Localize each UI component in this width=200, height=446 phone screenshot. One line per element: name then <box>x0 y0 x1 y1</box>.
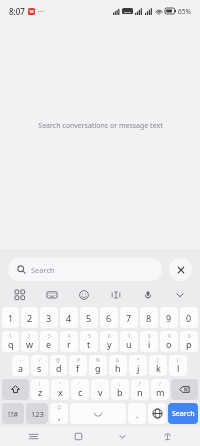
button[interactable]: 1 <box>2 307 19 328</box>
button[interactable]: " <box>51 379 69 400</box>
staticText: h <box>115 362 121 374</box>
button[interactable]: 7 <box>120 331 138 352</box>
button[interactable]: 5 <box>80 331 98 352</box>
button[interactable]: * <box>129 355 147 376</box>
button[interactable]: % <box>89 355 107 376</box>
button[interactable]: Backspace <box>171 379 198 400</box>
staticText: !?# <box>8 409 19 419</box>
staticText: a <box>18 362 24 374</box>
button[interactable]: 2 <box>21 307 38 328</box>
button[interactable]: 7 <box>120 307 138 328</box>
button[interactable]: 4 <box>60 307 78 328</box>
button[interactable]: Search <box>8 258 162 281</box>
button[interactable]: 9 <box>160 331 178 352</box>
staticText: v <box>98 386 103 398</box>
button[interactable]: Change language <box>148 403 166 424</box>
staticText: / <box>39 357 41 363</box>
button[interactable]: ? <box>131 379 149 400</box>
staticText: o <box>166 338 172 350</box>
button[interactable]: Sticker grid <box>12 287 28 303</box>
staticText: 123 <box>31 409 44 419</box>
staticText: 6 <box>108 333 111 339</box>
staticText: 5 <box>86 312 92 324</box>
staticText: % <box>96 357 100 363</box>
staticText: ☺ <box>57 405 62 410</box>
staticText: - <box>20 357 22 363</box>
button[interactable]: 4 <box>60 331 78 352</box>
button[interactable]: Voice input <box>140 287 156 303</box>
button[interactable]: 8 <box>140 307 158 328</box>
button[interactable]: 8 <box>140 331 158 352</box>
button[interactable]: : <box>91 379 109 400</box>
button[interactable]: Shift <box>2 379 29 400</box>
button[interactable]: Collapse toolbar <box>172 287 188 303</box>
button[interactable]: ; <box>111 379 129 400</box>
button[interactable]: Home <box>67 427 89 446</box>
button[interactable]: 6 <box>100 331 118 352</box>
staticText: p <box>186 338 192 350</box>
button[interactable]: 5 <box>80 307 98 328</box>
staticText: ' <box>79 381 81 387</box>
button[interactable]: 1 <box>2 331 19 352</box>
staticText: 3 <box>46 312 52 324</box>
button[interactable]: Text editing <box>108 287 124 303</box>
staticText: s <box>37 362 42 374</box>
button[interactable]: 6 <box>100 307 118 328</box>
staticText: f <box>76 362 80 374</box>
staticText: d <box>56 362 62 374</box>
button[interactable]: Back <box>111 427 133 446</box>
staticText: u <box>126 338 132 350</box>
button[interactable]: Recents <box>22 427 44 446</box>
button[interactable]: ' <box>71 379 89 400</box>
staticText: w <box>26 338 34 350</box>
staticText: 4 <box>66 312 72 324</box>
staticText: . <box>136 408 139 420</box>
button[interactable]: GIF keyboard <box>44 287 60 303</box>
button[interactable]: ( <box>149 355 167 376</box>
button[interactable]: Cursor <box>156 427 178 446</box>
button[interactable]: 3 <box>40 307 58 328</box>
staticText: 9 <box>168 333 171 339</box>
button[interactable]: 3 <box>40 331 58 352</box>
button[interactable]: / <box>151 379 169 400</box>
button[interactable]: 2 <box>21 331 38 352</box>
button[interactable]: ☺ <box>50 403 68 424</box>
button[interactable]: ! <box>31 379 49 400</box>
staticText: Search conversations or message text <box>38 121 163 131</box>
staticText: ; <box>119 381 121 387</box>
button[interactable]: 0 <box>180 307 198 328</box>
staticText: 7 <box>128 333 131 339</box>
staticText: t <box>87 338 91 350</box>
staticText: 8 <box>148 333 151 339</box>
button[interactable]: - <box>12 355 29 376</box>
staticText: ( <box>157 357 159 363</box>
staticText: 6 <box>106 312 112 324</box>
staticText: r <box>67 338 71 350</box>
button[interactable]: 0 <box>180 331 198 352</box>
staticText: 8:07 <box>9 6 25 17</box>
staticText: e <box>46 338 52 350</box>
staticText: @ <box>56 357 61 363</box>
button[interactable]: Search <box>168 403 198 424</box>
button[interactable]: # <box>69 355 87 376</box>
button[interactable]: !?# <box>2 403 24 424</box>
button[interactable]: 123 <box>26 403 48 424</box>
staticText: c <box>78 386 83 398</box>
staticText: i <box>148 338 151 350</box>
button[interactable]: / <box>31 355 48 376</box>
button[interactable]: . <box>128 403 146 424</box>
button[interactable]: Emoji <box>76 287 92 303</box>
button[interactable]: ) <box>169 355 187 376</box>
button[interactable]: & <box>109 355 127 376</box>
button[interactable]: @ <box>50 355 67 376</box>
button[interactable]: Space <box>70 403 126 424</box>
staticText: 65% <box>178 7 191 16</box>
staticText: 3 <box>48 333 51 339</box>
button[interactable]: Close search <box>169 258 192 281</box>
button[interactable]: 9 <box>160 307 178 328</box>
staticText: n <box>137 386 143 398</box>
staticText: Search <box>172 409 195 419</box>
staticText: l <box>177 362 180 374</box>
staticText: VoLTE <box>124 10 132 13</box>
staticText: & <box>116 357 120 363</box>
